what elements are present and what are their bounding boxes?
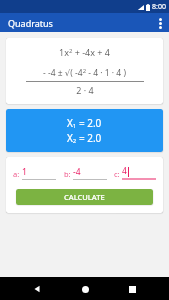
button[interactable]: Back — [26, 278, 48, 300]
button[interactable]: 1x2 + -4x + 4 — [6, 38, 163, 104]
button[interactable]: Recent apps — [121, 278, 143, 300]
staticText: 1x2 + -4x + 4 — [59, 46, 110, 58]
button[interactable]: c: — [114, 165, 156, 180]
staticText: X2 = 2.0 — [67, 131, 102, 145]
staticText: Quadratus — [8, 17, 53, 29]
staticText: 1 — [22, 166, 27, 178]
staticText: a: — [13, 169, 20, 179]
staticText: 8:00 — [152, 2, 166, 12]
button[interactable]: Home — [74, 278, 96, 300]
button[interactable]: More options — [151, 14, 169, 32]
staticText: CALCULATE — [64, 192, 105, 202]
staticText: c: — [114, 169, 120, 179]
staticText: - -4 ± √( -42 - 4 · 1 · 4 ) — [43, 67, 126, 79]
button[interactable]: CALCULATE — [16, 189, 153, 205]
staticText: 4 — [122, 165, 127, 177]
staticText: X1 = 2.0 — [67, 116, 102, 130]
button[interactable]: a: — [13, 166, 56, 180]
button[interactable]: X1 = 2.0 — [6, 109, 163, 152]
staticText: 2 · 4 — [76, 84, 94, 96]
staticText: -4 — [73, 166, 81, 178]
button[interactable]: b: — [64, 166, 107, 180]
staticText: b: — [64, 169, 71, 179]
